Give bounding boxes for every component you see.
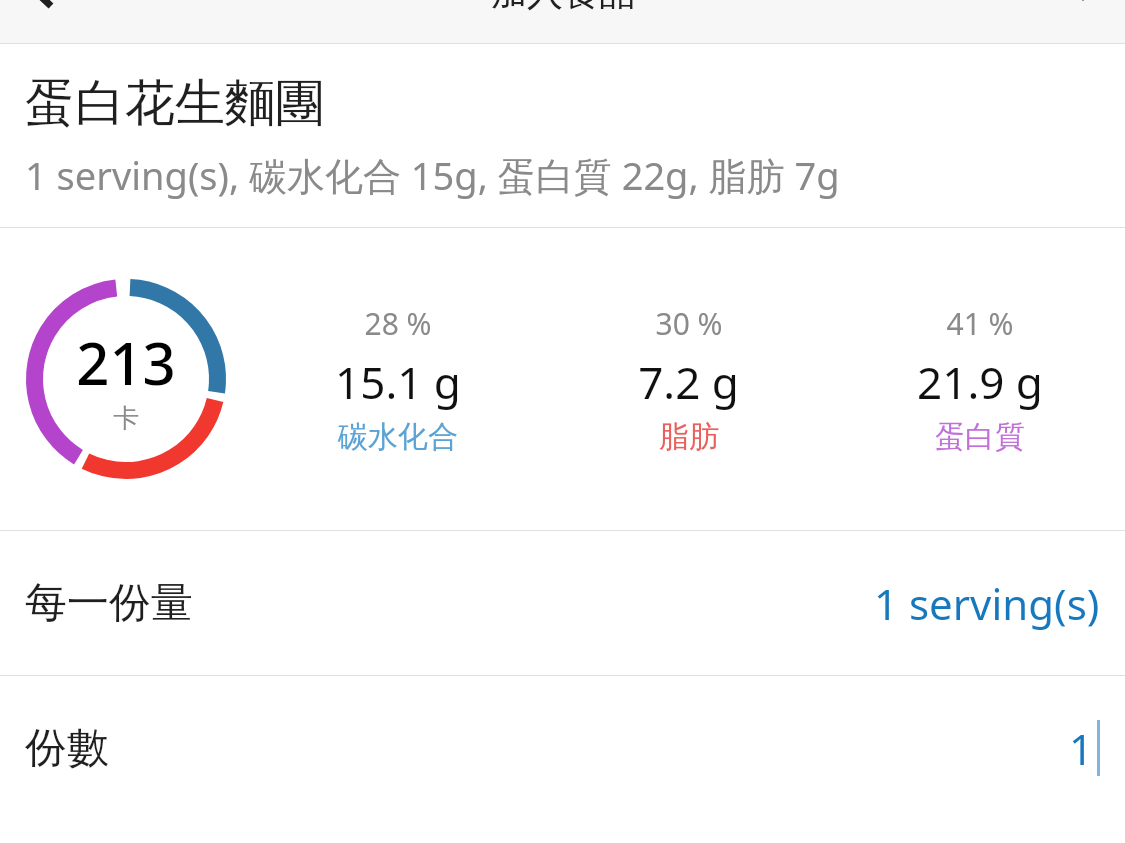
staticText: 脂肪 bbox=[659, 418, 719, 456]
staticText: 每一份量 bbox=[25, 577, 193, 630]
staticText: 蛋白質 bbox=[935, 418, 1025, 456]
staticText: 213 bbox=[76, 323, 176, 402]
staticText: 1 serving(s), 碳水化合 15g, 蛋白質 22g, 脂肪 7g bbox=[25, 149, 840, 201]
staticText: 碳水化合 bbox=[338, 418, 458, 456]
staticText: 15.1 g bbox=[335, 352, 461, 412]
button[interactable]: 蛋白花生麵團 bbox=[0, 44, 1125, 227]
staticText: 份數 bbox=[25, 722, 109, 775]
staticText: 卡 bbox=[113, 402, 139, 435]
button[interactable]: 份數 bbox=[0, 676, 1125, 820]
staticText: 蛋白花生麵團 bbox=[25, 72, 325, 135]
button[interactable]: Expand bbox=[1055, 0, 1111, 14]
staticText: 41 % bbox=[946, 303, 1014, 344]
staticText: 21.9 g bbox=[917, 352, 1043, 412]
button[interactable]: 每一份量 bbox=[0, 531, 1125, 675]
staticText: 1 bbox=[1069, 720, 1094, 777]
staticText: 30 % bbox=[655, 303, 723, 344]
button[interactable]: Back bbox=[14, 0, 70, 12]
staticText: 1 serving(s) bbox=[874, 575, 1100, 632]
staticText: 28 % bbox=[364, 303, 432, 344]
staticText: 加入食品 bbox=[491, 0, 635, 14]
staticText: 7.2 g bbox=[638, 352, 739, 412]
